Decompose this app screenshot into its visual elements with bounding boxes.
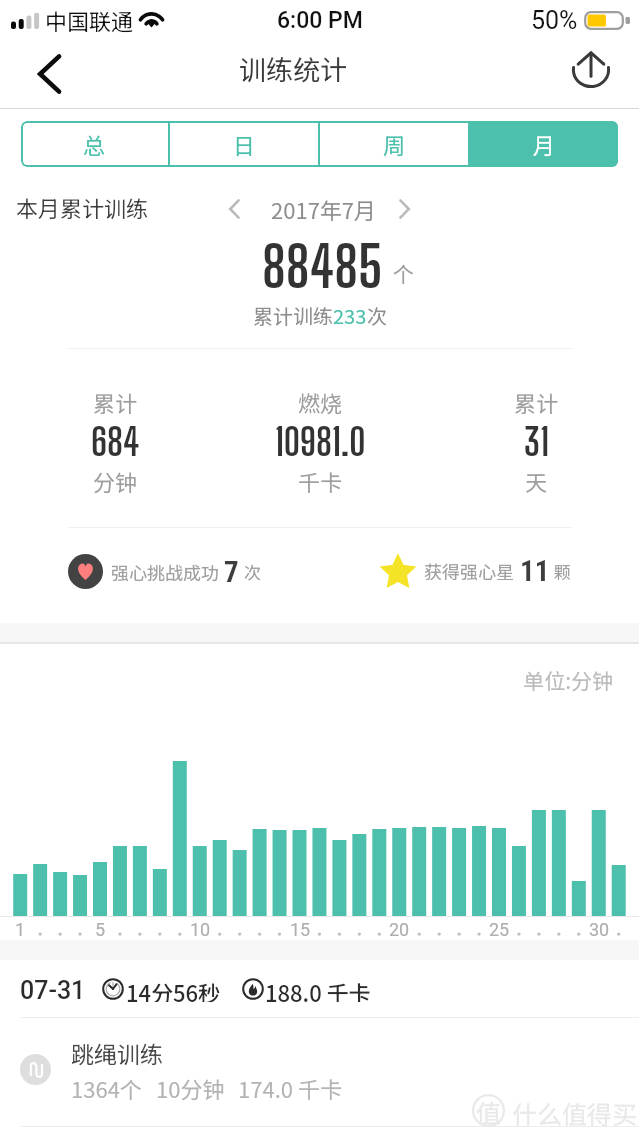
button[interactable]: Share	[560, 37, 622, 105]
staticText: 14分56秒	[126, 976, 221, 1002]
staticText: 中国联通	[45, 4, 134, 36]
button[interactable]: 跳绳训练	[0, 1018, 639, 1126]
staticText: 单位:分钟	[0, 665, 613, 695]
staticText: 31	[524, 420, 549, 464]
staticText: 11	[520, 554, 550, 588]
staticText: 233	[333, 301, 367, 330]
staticText: 月	[533, 128, 556, 160]
staticText: 25	[489, 919, 510, 940]
button[interactable]: 总	[21, 121, 168, 167]
staticText: 次	[367, 301, 387, 330]
staticText: 次	[244, 559, 261, 584]
staticText: 10分钟	[156, 1072, 225, 1104]
staticText: 50%	[531, 6, 578, 35]
staticText: 6:00 PM	[277, 7, 363, 34]
button[interactable]: 强心挑战成功	[68, 554, 261, 589]
staticText: 周	[383, 128, 406, 160]
staticText: 获得强心星	[424, 558, 514, 584]
staticText: 5	[95, 919, 106, 940]
staticText: 燃烧	[298, 386, 343, 418]
staticText: 30	[589, 919, 610, 940]
staticText: 分钟	[93, 465, 138, 497]
staticText: 20	[389, 919, 410, 940]
staticText: 累计训练	[253, 301, 333, 330]
button[interactable]: Previous month	[218, 192, 252, 226]
staticText: 7	[224, 555, 239, 589]
staticText: 15	[290, 919, 311, 940]
staticText: 10	[190, 919, 211, 940]
staticText: 1	[15, 919, 26, 940]
staticText: 10981.0	[275, 420, 366, 464]
staticText: 什么值得买	[512, 1095, 638, 1131]
staticText: 训练统计	[239, 49, 347, 88]
staticText: 强心挑战成功	[111, 559, 219, 585]
staticText: 684	[91, 420, 140, 464]
staticText: 颗	[554, 559, 571, 584]
button[interactable]: 日	[170, 121, 318, 167]
button[interactable]: 获得强心星	[381, 553, 571, 589]
staticText: 累计	[514, 386, 559, 418]
staticText: 88485	[262, 234, 383, 294]
staticText: 总	[83, 128, 106, 160]
staticText: 本月累计训练	[16, 191, 149, 223]
staticText: 千卡	[298, 465, 343, 497]
staticText: 174.0 千卡	[238, 1072, 342, 1104]
button[interactable]: 周	[320, 121, 468, 167]
staticText: 跳绳训练	[71, 1036, 163, 1069]
staticText: 1364个	[71, 1072, 142, 1104]
staticText: 个	[393, 258, 414, 288]
button[interactable]: Back	[18, 40, 80, 108]
staticText: 值	[476, 1094, 502, 1127]
button[interactable]: 月	[470, 121, 618, 167]
staticText: 日	[233, 128, 256, 160]
staticText: 07-31	[20, 976, 86, 1002]
staticText: 天	[525, 465, 548, 497]
staticText: 188.0 千卡	[265, 976, 371, 1002]
button[interactable]: Next month	[387, 192, 421, 226]
staticText: 2017年7月	[271, 193, 377, 225]
staticText: 累计	[93, 386, 138, 418]
